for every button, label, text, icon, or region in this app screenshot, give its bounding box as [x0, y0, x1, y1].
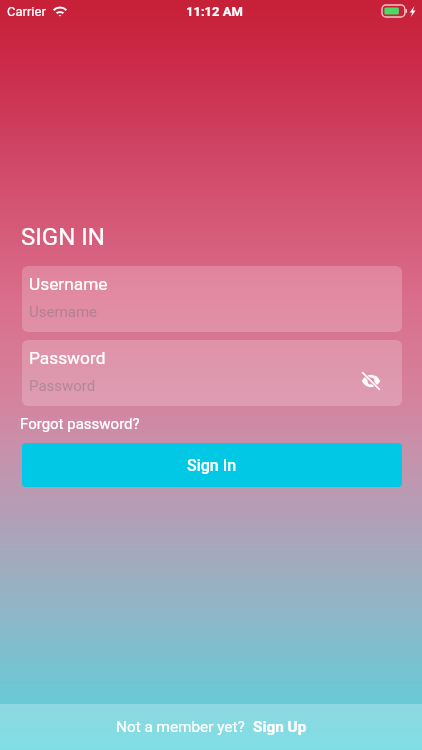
staticText: Password	[29, 348, 106, 368]
staticText: Password	[29, 377, 96, 395]
staticText: Carrier	[7, 4, 46, 19]
button[interactable]: Sign Up	[253, 718, 307, 736]
staticText: Sign In	[187, 456, 237, 475]
staticText: Username	[29, 303, 98, 321]
button[interactable]: Sign In	[22, 443, 402, 487]
button[interactable]: Toggle password visibility	[355, 365, 387, 397]
staticText: Username	[29, 274, 108, 294]
button[interactable]: Forgot password?	[20, 415, 140, 433]
staticText: Not a member yet?	[116, 718, 245, 736]
button[interactable]: Password	[22, 340, 402, 406]
staticText: SIGN IN	[21, 223, 105, 251]
button[interactable]: Username	[22, 266, 402, 332]
staticText: 11:12 AM	[186, 4, 243, 19]
